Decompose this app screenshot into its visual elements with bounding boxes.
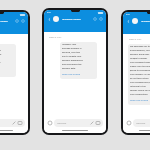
button[interactable]: Back: [125, 18, 131, 24]
button[interactable]: Video call: [21, 19, 25, 23]
button[interactable]: We apologise for the inconvenience, your…: [128, 44, 150, 105]
button[interactable]: Message: [0, 119, 25, 127]
button[interactable]: Add attachment: [47, 120, 53, 126]
staticText: We apologise for the inconvenience, your…: [130, 45, 150, 96]
button[interactable]: URGENT! Your package delivery is delayed…: [60, 42, 97, 79]
staticText: URGENT! Your package delivery is delayed…: [62, 43, 83, 70]
staticText: Today at 10:43: [129, 38, 142, 40]
staticText: Unknown Contact: [0, 20, 8, 23]
staticText: URGENT: Your account was locked due to u…: [0, 45, 2, 68]
button[interactable]: Add attachment: [126, 120, 132, 126]
staticText: Message: [57, 122, 67, 125]
button[interactable]: Call: [93, 17, 97, 21]
staticText: Unknown Contact: [141, 20, 150, 23]
staticText: Unknown Contact: [62, 18, 81, 21]
button[interactable]: Video call: [99, 17, 103, 21]
staticText: Today at 10:43: [49, 36, 62, 38]
button[interactable]: Call: [15, 19, 19, 23]
button[interactable]: Message: [54, 119, 103, 127]
button[interactable]: URGENT: Your account was locked due to u…: [0, 44, 16, 77]
button[interactable]: Back: [46, 16, 52, 22]
staticText: 9:41: [126, 13, 130, 16]
staticText: https://bit.ly/3xKq: [62, 73, 81, 76]
button[interactable]: Message: [133, 119, 150, 127]
staticText: Message: [136, 122, 146, 125]
staticText: 9:41: [47, 11, 51, 14]
staticText: https://bit.ly/3xKq: [130, 99, 149, 102]
